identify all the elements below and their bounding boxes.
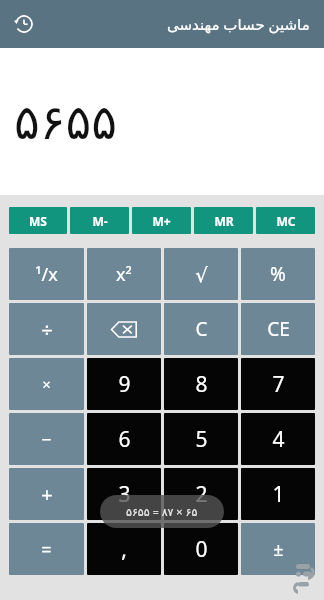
button[interactable]: MS (9, 207, 67, 234)
staticText: + (41, 481, 53, 508)
button[interactable]: 0 (164, 523, 238, 575)
button[interactable]: √ (164, 248, 238, 300)
staticText: 8 (195, 370, 208, 399)
staticText: √ (195, 263, 208, 286)
staticText: 0 (195, 535, 208, 564)
staticText: MC (276, 213, 296, 229)
button[interactable]: M+ (132, 207, 191, 234)
staticText: x² (116, 262, 132, 287)
staticText: − (41, 427, 52, 452)
staticText: ¹/x (35, 262, 58, 287)
staticText: M- (92, 213, 108, 229)
staticText: 9 (118, 370, 131, 399)
staticText: 2 (195, 480, 208, 509)
button[interactable]: Backspace (87, 303, 161, 355)
staticText: ± (273, 537, 284, 562)
button[interactable]: 9 (87, 358, 161, 410)
button[interactable]: × (9, 358, 84, 410)
staticText: MS (29, 213, 47, 229)
button[interactable]: M- (70, 207, 129, 234)
staticText: % (270, 261, 286, 287)
button[interactable]: History (8, 8, 40, 40)
button[interactable]: MR (194, 207, 253, 234)
staticText: ماشین حساب مهندسی (167, 14, 310, 34)
button[interactable]: − (9, 413, 84, 465)
staticText: 6 (118, 425, 131, 454)
staticText: ۵۶۵۵ (14, 94, 118, 150)
button[interactable]: ± (241, 523, 315, 575)
button[interactable]: x² (87, 248, 161, 300)
staticText: ۵۶۵۵ = ۸۷ × ۶۵ (126, 504, 198, 519)
staticText: ÷ (41, 316, 53, 343)
button[interactable]: MC (256, 207, 315, 234)
button[interactable]: ¹/x (9, 248, 84, 300)
button[interactable]: % (241, 248, 315, 300)
button[interactable]: 5 (164, 413, 238, 465)
button[interactable]: 4 (241, 413, 315, 465)
staticText: 7 (272, 370, 285, 399)
staticText: × (42, 374, 51, 394)
staticText: = (41, 537, 52, 562)
staticText: 1 (272, 480, 285, 509)
button[interactable]: 7 (241, 358, 315, 410)
staticText: CE (267, 316, 290, 342)
button[interactable]: 2 (164, 468, 238, 520)
staticText: M+ (152, 213, 171, 229)
staticText: 5 (195, 425, 208, 454)
button[interactable]: ÷ (9, 303, 84, 355)
button[interactable]: CE (241, 303, 315, 355)
staticText: MR (214, 213, 234, 229)
button[interactable]: 6 (87, 413, 161, 465)
staticText: 4 (272, 425, 285, 454)
button[interactable]: = (9, 523, 84, 575)
button[interactable]: C (164, 303, 238, 355)
button[interactable]: + (9, 468, 84, 520)
staticText: , (121, 535, 127, 564)
button[interactable]: 8 (164, 358, 238, 410)
button[interactable]: 3 (87, 468, 161, 520)
button[interactable]: 1 (241, 468, 315, 520)
staticText: 3 (118, 480, 131, 509)
staticText: C (195, 316, 208, 342)
button[interactable]: , (87, 523, 161, 575)
